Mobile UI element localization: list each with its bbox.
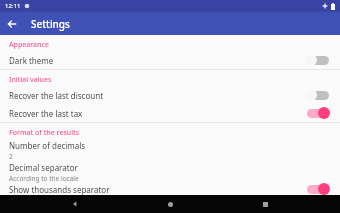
staticText: Decimal separator bbox=[9, 162, 78, 173]
button[interactable]: Number of decimals bbox=[0, 139, 340, 161]
button[interactable]: Recent apps bbox=[245, 195, 285, 213]
button[interactable]: Recover the last discount bbox=[0, 86, 340, 104]
staticText: Format of the results bbox=[9, 128, 80, 138]
staticText: Recover the last tax bbox=[9, 108, 83, 119]
staticText: Show thousands separator bbox=[9, 184, 110, 195]
button[interactable]: Back bbox=[0, 12, 23, 35]
button[interactable]: Back bbox=[55, 195, 95, 213]
staticText: 12:11 bbox=[5, 2, 21, 10]
staticText: 2 bbox=[9, 152, 13, 161]
staticText: Settings bbox=[31, 17, 70, 31]
staticText: Appearance bbox=[9, 40, 49, 50]
staticText: Recover the last discount bbox=[9, 90, 104, 101]
button[interactable]: Show thousands separator bbox=[0, 183, 340, 195]
staticText: Number of decimals bbox=[9, 140, 86, 151]
button[interactable]: Dark theme bbox=[0, 51, 340, 69]
button[interactable]: Decimal separator bbox=[0, 161, 340, 183]
staticText: Initial values bbox=[9, 75, 52, 85]
staticText: Dark theme bbox=[9, 55, 54, 66]
button[interactable]: Recover the last tax bbox=[0, 104, 340, 122]
staticText: According to the locale bbox=[9, 174, 79, 183]
button[interactable]: Home bbox=[150, 195, 190, 213]
